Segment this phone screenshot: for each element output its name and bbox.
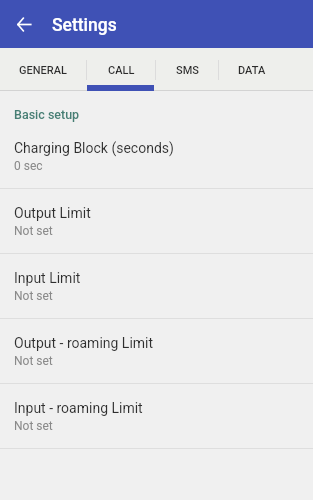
staticText: SMS: [176, 64, 199, 77]
staticText: GENERAL: [19, 64, 67, 77]
button[interactable]: GENERAL: [0, 48, 86, 91]
staticText: Input - roaming Limit: [14, 400, 143, 416]
button[interactable]: SMS: [156, 48, 218, 91]
staticText: Not set: [14, 224, 53, 238]
staticText: DATA: [238, 64, 266, 77]
staticText: Basic setup: [14, 107, 80, 122]
staticText: Not set: [14, 354, 53, 368]
staticText: Not set: [14, 289, 53, 303]
button[interactable]: Navigate back: [10, 10, 38, 38]
staticText: Charging Block (seconds): [14, 140, 174, 156]
staticText: Output - roaming Limit: [14, 335, 154, 351]
button[interactable]: Charging Block (seconds): [0, 124, 313, 188]
button[interactable]: Input - roaming Limit: [0, 384, 313, 448]
staticText: Output Limit: [14, 205, 91, 221]
button[interactable]: CALL: [87, 48, 155, 91]
staticText: Settings: [52, 15, 117, 36]
button[interactable]: DATA: [219, 48, 285, 91]
button[interactable]: Output - roaming Limit: [0, 319, 313, 383]
staticText: 0 sec: [14, 159, 43, 173]
staticText: Input Limit: [14, 270, 81, 286]
button[interactable]: Input Limit: [0, 254, 313, 318]
staticText: CALL: [108, 64, 135, 77]
button[interactable]: Output Limit: [0, 189, 313, 253]
staticText: Not set: [14, 419, 53, 433]
